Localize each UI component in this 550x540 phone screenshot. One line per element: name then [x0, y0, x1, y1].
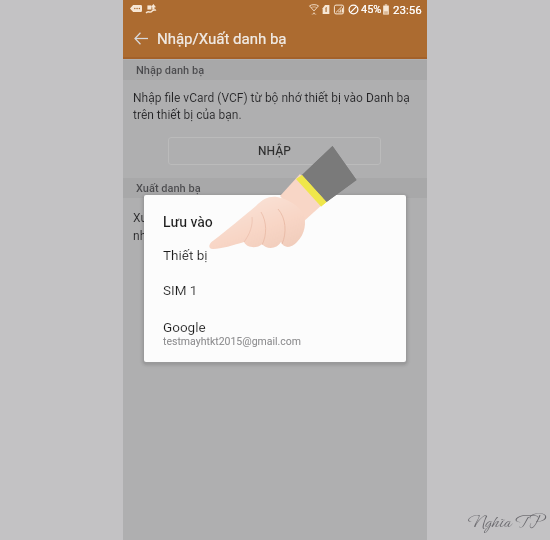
staticText: Nhập/Xuất danh bạ — [157, 30, 287, 48]
staticText: Lưu vào — [163, 214, 213, 230]
button[interactable]: Lưu vào — [144, 201, 406, 233]
staticText: testmayhtkt2015@gmail.com — [163, 335, 302, 347]
staticText: 23:56 — [393, 3, 422, 16]
staticText: Nghĩa TP — [468, 509, 543, 534]
button[interactable]: SIM 1 — [144, 273, 406, 307]
staticText: NHẬP — [258, 144, 291, 158]
button[interactable]: Thiết bị — [144, 238, 406, 272]
staticText: SIM 1 — [163, 282, 198, 298]
staticText: Nhập danh bạ — [136, 64, 205, 77]
staticText: Xuất danh bạ từ thiết bị của bạn vào bộ … — [133, 211, 341, 243]
button[interactable]: NHẬP — [168, 137, 381, 165]
staticText: Google — [163, 319, 206, 335]
button[interactable]: Back — [128, 25, 154, 51]
staticText: Nhập file vCard (VCF) từ bộ nhớ thiết bị… — [133, 91, 410, 122]
staticText: Xuất danh bạ — [136, 182, 201, 195]
button[interactable]: Google — [144, 310, 406, 355]
staticText: 45% — [361, 3, 382, 16]
staticText: Thiết bị — [163, 247, 208, 263]
